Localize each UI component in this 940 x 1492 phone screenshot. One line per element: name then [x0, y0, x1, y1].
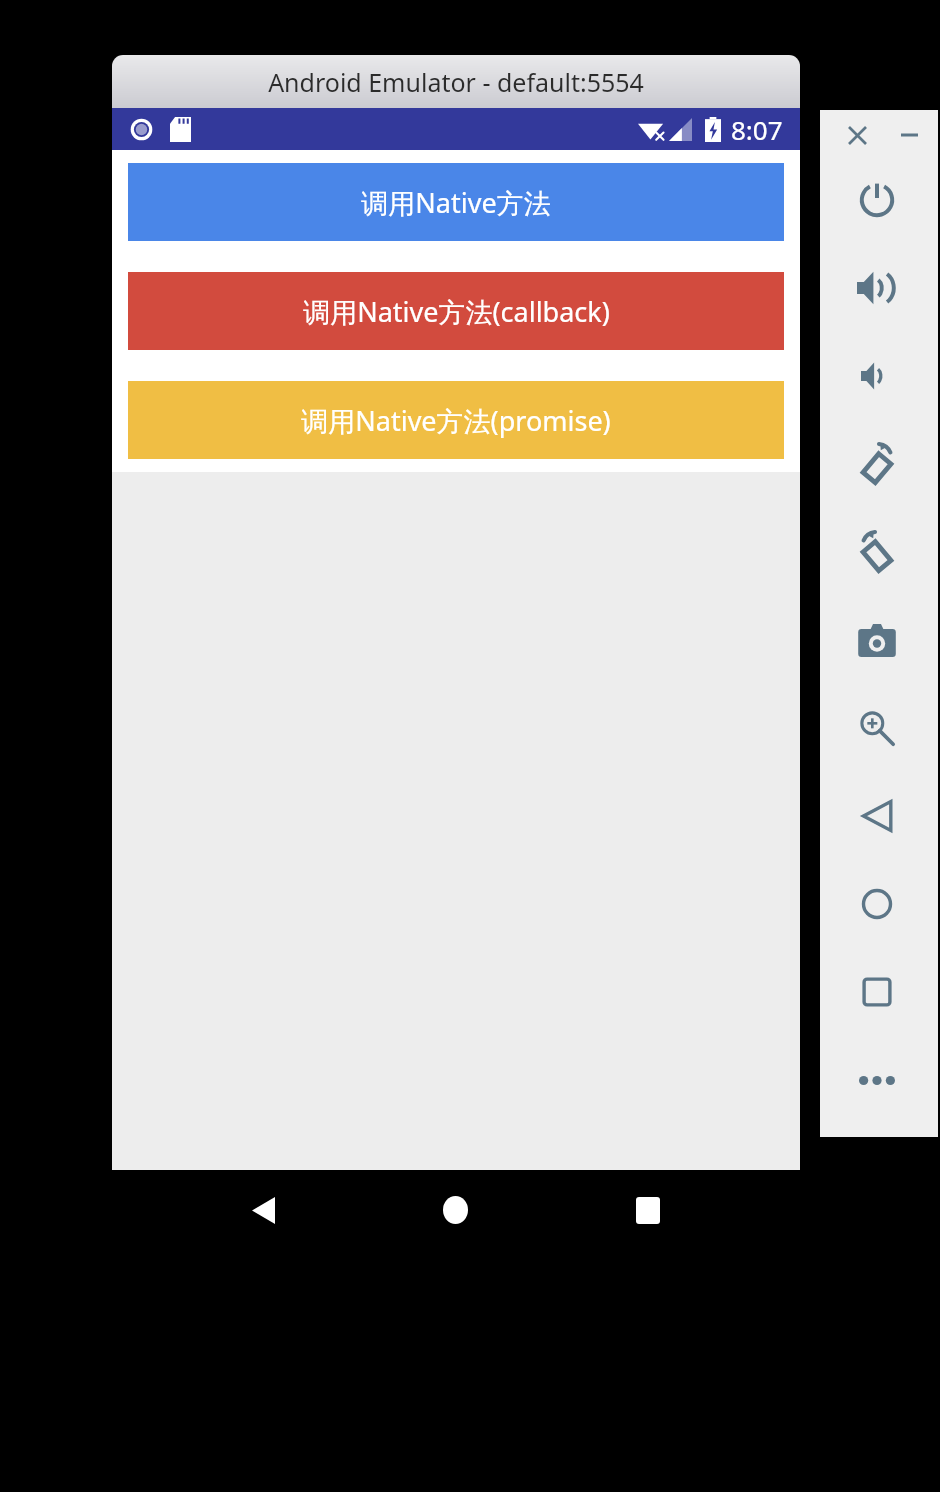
button[interactable]: Recent apps: [622, 1184, 674, 1236]
button[interactable]: Take screenshot: [820, 596, 938, 684]
button[interactable]: Rotate right: [820, 508, 938, 596]
button[interactable]: Rotate left: [820, 420, 938, 508]
button[interactable]: Overview: [820, 948, 938, 1036]
button[interactable]: Back: [820, 772, 938, 860]
button[interactable]: Minimize: [888, 114, 930, 156]
button[interactable]: Home: [429, 1184, 481, 1236]
staticText: 调用Native方法(promise): [301, 402, 611, 439]
button[interactable]: Volume up: [820, 244, 938, 332]
button[interactable]: Back: [237, 1184, 289, 1236]
staticText: Android Emulator - default:5554: [268, 65, 644, 99]
button[interactable]: Home: [820, 860, 938, 948]
button[interactable]: More: [820, 1036, 938, 1124]
staticText: 调用Native方法: [361, 184, 551, 221]
button[interactable]: Volume down: [820, 332, 938, 420]
button[interactable]: Power: [820, 156, 938, 244]
button[interactable]: 调用Native方法(callback): [128, 272, 784, 350]
staticText: 8:07: [731, 112, 783, 147]
staticText: 调用Native方法(callback): [303, 293, 610, 330]
button[interactable]: 调用Native方法(promise): [128, 381, 784, 459]
button[interactable]: Zoom in: [820, 684, 938, 772]
button[interactable]: 调用Native方法: [128, 163, 784, 241]
button[interactable]: Close: [836, 114, 878, 156]
